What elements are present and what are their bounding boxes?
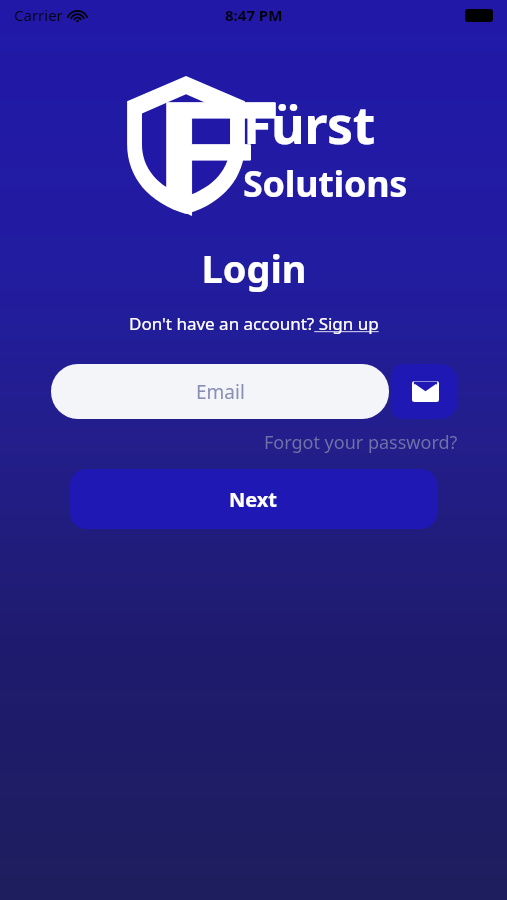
staticText: Next (229, 486, 278, 513)
button[interactable]: Email (392, 364, 458, 419)
staticText: Forgot your password? (264, 430, 458, 455)
button[interactable]: Email (51, 364, 389, 419)
staticText: Solutions (243, 159, 408, 208)
staticText: Carrier (14, 5, 63, 25)
staticText: 8:47 PM (225, 5, 283, 25)
staticText: Don't have an account? Sign up (129, 312, 379, 335)
button[interactable]: Next (70, 469, 437, 529)
button[interactable]: Forgot your password? (264, 430, 458, 455)
staticText: Fürst (243, 88, 375, 159)
staticText: Login (201, 242, 307, 294)
staticText: Email (196, 379, 245, 405)
button[interactable]: Don't have an account? Sign up (129, 312, 379, 335)
